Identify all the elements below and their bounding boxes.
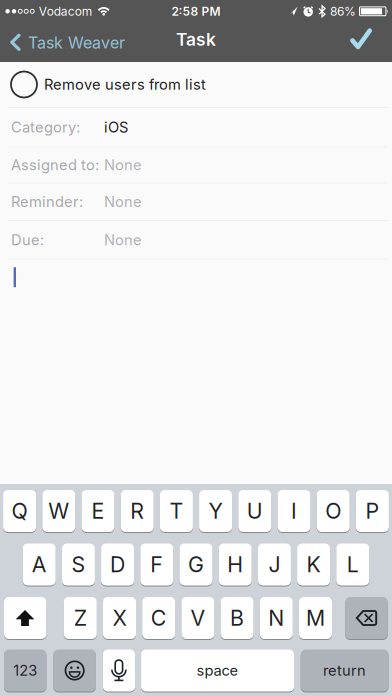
- staticText: S: [71, 552, 85, 577]
- staticText: return: [323, 662, 366, 679]
- staticText: 2:58 PM: [171, 4, 220, 18]
- button[interactable]: [350, 20, 392, 62]
- staticText: F: [150, 552, 163, 577]
- button[interactable]: D: [101, 543, 134, 586]
- button[interactable]: P: [356, 489, 389, 532]
- staticText: K: [307, 552, 321, 577]
- button[interactable]: A: [23, 543, 56, 586]
- staticText: Due:: [11, 231, 44, 248]
- staticText: iOS: [104, 119, 128, 136]
- staticText: None: [104, 231, 142, 248]
- button[interactable]: [4, 596, 46, 639]
- button[interactable]: C: [142, 596, 175, 639]
- staticText: None: [104, 193, 142, 210]
- staticText: space: [197, 662, 239, 679]
- staticText: C: [151, 605, 167, 631]
- staticText: V: [190, 605, 205, 631]
- button[interactable]: Reminder:: [0, 183, 392, 220]
- staticText: G: [188, 552, 204, 577]
- staticText: Remove users from list: [44, 76, 206, 93]
- button[interactable]: X: [103, 596, 136, 639]
- button[interactable]: T: [160, 489, 193, 532]
- button[interactable]: Z: [64, 596, 97, 639]
- staticText: None: [104, 156, 142, 174]
- button[interactable]: F: [140, 543, 173, 586]
- button[interactable]: V: [181, 596, 214, 639]
- staticText: M: [306, 605, 325, 631]
- button[interactable]: space: [141, 649, 294, 692]
- staticText: N: [268, 605, 284, 631]
- staticText: 86%: [330, 4, 356, 18]
- button[interactable]: J: [258, 543, 291, 586]
- staticText: H: [227, 552, 243, 577]
- button[interactable]: H: [219, 543, 252, 586]
- staticText: E: [91, 498, 104, 524]
- button[interactable]: K: [297, 543, 330, 586]
- staticText: R: [130, 498, 144, 524]
- staticText: X: [112, 605, 126, 631]
- staticText: Reminder:: [11, 193, 83, 210]
- button[interactable]: Q: [3, 489, 36, 532]
- staticText: Y: [209, 498, 223, 524]
- staticText: L: [347, 552, 359, 577]
- staticText: P: [365, 498, 379, 524]
- button[interactable]: S: [62, 543, 95, 586]
- button[interactable]: B: [221, 596, 254, 639]
- button[interactable]: 123: [4, 649, 46, 692]
- button[interactable]: Task Weaver: [0, 20, 125, 62]
- button[interactable]: M: [299, 596, 332, 639]
- button[interactable]: Due:: [0, 221, 392, 259]
- button[interactable]: [53, 649, 96, 692]
- button[interactable]: W: [42, 489, 75, 532]
- button[interactable]: Assigned to:: [0, 147, 392, 182]
- staticText: Category:: [11, 119, 80, 136]
- staticText: W: [48, 498, 69, 524]
- button[interactable]: Y: [199, 489, 232, 532]
- button[interactable]: I: [277, 489, 310, 532]
- staticText: T: [169, 498, 183, 524]
- button[interactable]: N: [260, 596, 293, 639]
- staticText: A: [32, 552, 47, 577]
- button[interactable]: O: [317, 489, 350, 532]
- staticText: U: [247, 498, 263, 524]
- button[interactable]: Category:: [0, 108, 392, 146]
- button[interactable]: U: [238, 489, 271, 532]
- button[interactable]: E: [81, 489, 114, 532]
- button[interactable]: G: [179, 543, 212, 586]
- staticText: Assigned to:: [11, 156, 99, 174]
- staticText: D: [110, 552, 125, 577]
- staticText: 123: [13, 662, 37, 679]
- button[interactable]: Remove users from list: [0, 62, 392, 107]
- staticText: B: [230, 605, 244, 631]
- button[interactable]: return: [301, 649, 388, 692]
- staticText: Task: [176, 29, 216, 50]
- button[interactable]: [345, 596, 388, 639]
- staticText: J: [268, 552, 280, 577]
- button[interactable]: L: [336, 543, 369, 586]
- staticText: O: [325, 498, 341, 524]
- button[interactable]: [103, 649, 135, 692]
- staticText: Z: [74, 605, 87, 631]
- staticText: I: [291, 498, 297, 524]
- button[interactable]: R: [121, 489, 154, 532]
- staticText: Q: [12, 498, 28, 524]
- staticText: Task Weaver: [28, 33, 125, 52]
- staticText: Vodacom: [39, 4, 93, 18]
